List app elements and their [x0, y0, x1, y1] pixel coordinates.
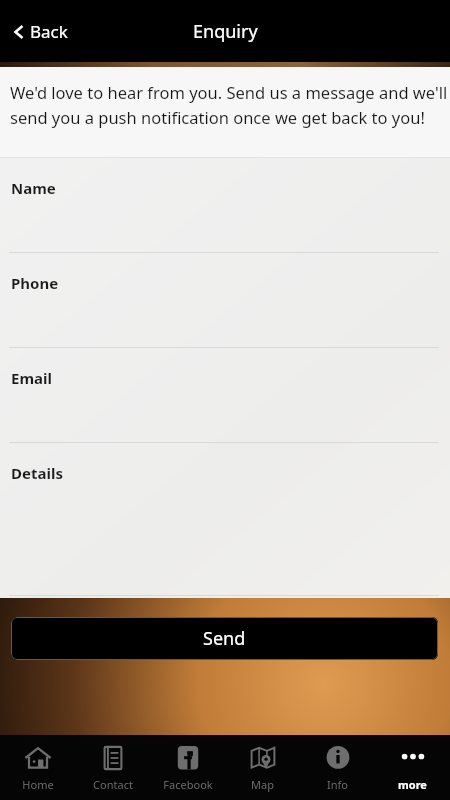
button[interactable]: Phone — [0, 253, 450, 348]
staticText: Phone — [11, 273, 59, 293]
button[interactable]: Home — [0, 735, 75, 800]
staticText: Home — [22, 777, 54, 792]
button[interactable]: Facebook — [150, 735, 225, 800]
staticText: Enquiry — [193, 19, 258, 44]
button[interactable]: Contact — [75, 735, 150, 800]
staticText: Contact — [93, 777, 133, 792]
staticText: more — [398, 777, 427, 792]
button[interactable]: Info — [300, 735, 375, 800]
button[interactable]: Map — [225, 735, 300, 800]
staticText: We'd love to hear from you. Send us a me… — [10, 81, 450, 128]
staticText: Map — [251, 777, 274, 792]
button[interactable]: Email — [0, 348, 450, 443]
button[interactable]: Details — [0, 443, 450, 596]
button[interactable]: Name — [0, 158, 450, 253]
staticText: Facebook — [163, 777, 213, 792]
staticText: Email — [11, 368, 52, 388]
staticText: Name — [11, 178, 56, 198]
button[interactable]: more — [375, 735, 450, 800]
button[interactable]: Send — [11, 617, 438, 660]
staticText: Info — [327, 777, 348, 792]
button[interactable]: Back — [10, 14, 72, 49]
staticText: Send — [203, 626, 246, 651]
staticText: Back — [30, 20, 68, 43]
staticText: Details — [11, 463, 63, 483]
